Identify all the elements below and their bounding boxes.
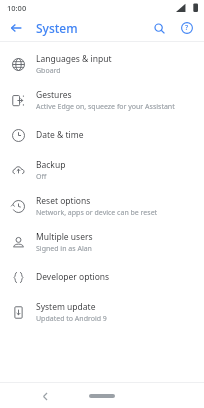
staticText: Developer options xyxy=(36,271,110,283)
staticText: ? xyxy=(185,23,189,33)
staticText: Languages & input xyxy=(36,53,112,65)
staticText: Multiple users xyxy=(36,231,93,243)
staticText: Reset options xyxy=(36,195,91,207)
staticText: Off xyxy=(36,172,47,182)
staticText: System update xyxy=(36,301,96,313)
staticText: Signed in as Alan xyxy=(36,244,92,254)
button[interactable]: Home xyxy=(89,394,115,398)
staticText: Gestures xyxy=(36,89,72,101)
staticText: Date & time xyxy=(36,129,84,141)
staticText: Backup xyxy=(36,159,66,171)
button[interactable]: Backup xyxy=(0,152,204,188)
button[interactable]: Search xyxy=(148,17,170,39)
staticText: 10:00 xyxy=(7,3,27,13)
button[interactable]: Help xyxy=(176,17,198,39)
button[interactable]: Date & time xyxy=(0,118,204,152)
staticText: Updated to Android 9 xyxy=(36,314,107,324)
button[interactable]: Back xyxy=(36,387,54,405)
staticText: System xyxy=(36,20,78,36)
button[interactable]: Languages & input xyxy=(0,46,204,82)
staticText: Gboard xyxy=(36,66,61,76)
staticText: Active Edge on, squeeze for your Assista… xyxy=(36,102,175,112)
button[interactable]: Gestures xyxy=(0,82,204,118)
staticText: Network, apps or device can be reset xyxy=(36,208,158,218)
button[interactable]: Back xyxy=(4,16,28,40)
button[interactable]: System update xyxy=(0,294,204,330)
button[interactable]: Developer options xyxy=(0,260,204,294)
button[interactable]: Multiple users xyxy=(0,224,204,260)
button[interactable]: Reset options xyxy=(0,188,204,224)
